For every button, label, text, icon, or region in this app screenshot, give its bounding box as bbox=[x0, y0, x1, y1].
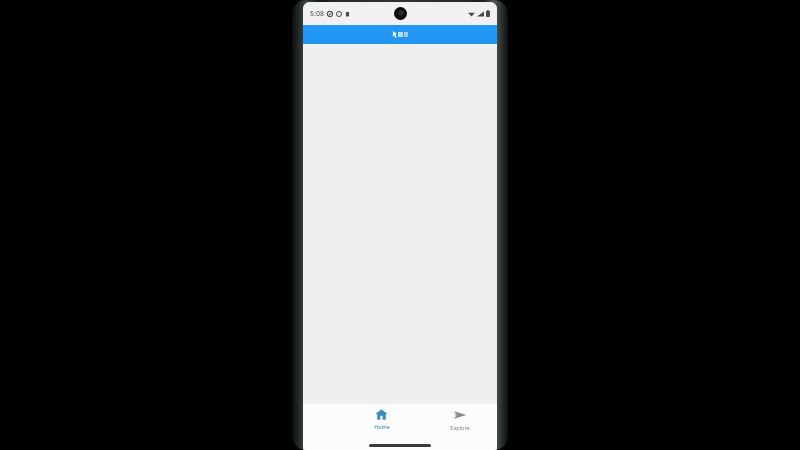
staticText: 5:08 bbox=[310, 9, 324, 19]
button[interactable]: Explore bbox=[438, 404, 481, 441]
button[interactable]: Home bbox=[360, 404, 403, 441]
other: Explore bbox=[453, 408, 467, 422]
staticText: Explore bbox=[450, 424, 470, 431]
staticText: Home bbox=[374, 423, 390, 430]
other: Home bbox=[375, 408, 388, 421]
